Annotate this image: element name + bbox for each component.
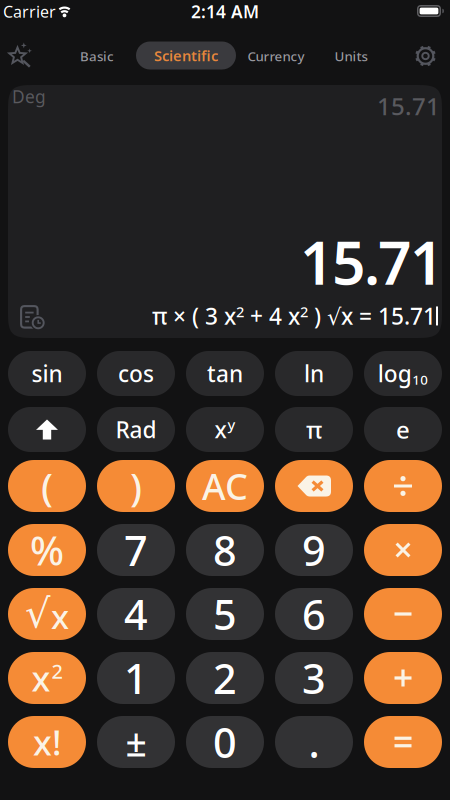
- staticText: (: [41, 460, 53, 512]
- button[interactable]: Themes: [2, 37, 38, 73]
- staticText: tan: [207, 358, 243, 388]
- staticText: ±: [125, 717, 146, 767]
- staticText: 6: [302, 587, 326, 641]
- staticText: 2: [51, 658, 62, 684]
- staticText: Currency: [247, 47, 304, 65]
- button[interactable]: %: [8, 524, 86, 576]
- staticText: 2:14 AM: [191, 0, 259, 23]
- button[interactable]: 2: [186, 652, 264, 704]
- button[interactable]: 8: [186, 524, 264, 576]
- staticText: 3: [302, 651, 326, 705]
- staticText: e: [396, 414, 410, 445]
- staticText: ) √x = 15.71: [308, 301, 436, 331]
- button[interactable]: e: [364, 407, 442, 452]
- button[interactable]: Backspace: [275, 460, 353, 512]
- button[interactable]: 1: [97, 652, 175, 704]
- staticText: ln: [304, 358, 324, 388]
- staticText: sin: [31, 358, 62, 388]
- staticText: √: [25, 591, 50, 637]
- button[interactable]: Scientific: [136, 41, 236, 69]
- button[interactable]: Multiply: [364, 524, 442, 576]
- staticText: y: [227, 415, 235, 434]
- staticText: 4: [124, 587, 148, 641]
- button[interactable]: 6: [275, 588, 353, 640]
- staticText: 0: [213, 715, 237, 769]
- staticText: 2: [300, 302, 308, 321]
- staticText: 5: [213, 587, 237, 641]
- button[interactable]: Subtract: [364, 588, 442, 640]
- button[interactable]: 9: [275, 524, 353, 576]
- button[interactable]: AC: [186, 460, 264, 512]
- staticText: Basic: [80, 47, 114, 65]
- staticText: Scientific: [154, 46, 218, 65]
- staticText: + 4 x: [244, 301, 300, 331]
- staticText: Rad: [115, 414, 156, 444]
- button[interactable]: Settings: [407, 38, 443, 74]
- staticText: Units: [334, 47, 367, 65]
- button[interactable]: Square root: [8, 588, 86, 640]
- staticText: %: [30, 523, 64, 576]
- button[interactable]: Rad: [97, 407, 175, 452]
- button[interactable]: π: [275, 407, 353, 452]
- button[interactable]: 5: [186, 588, 264, 640]
- staticText: log: [378, 358, 412, 388]
- staticText: 10: [412, 371, 428, 388]
- button[interactable]: sin: [8, 351, 86, 396]
- staticText: x: [51, 594, 69, 638]
- staticText: .: [308, 715, 319, 769]
- staticText: Deg: [12, 85, 46, 108]
- staticText: 2: [213, 651, 237, 705]
- staticText: x: [31, 655, 50, 701]
- staticText: 2: [236, 302, 244, 321]
- button[interactable]: 0: [186, 716, 264, 768]
- button[interactable]: tan: [186, 351, 264, 396]
- button[interactable]: cos: [97, 351, 175, 396]
- button[interactable]: x: [8, 652, 86, 704]
- staticText: 8: [213, 523, 237, 577]
- button[interactable]: x: [186, 407, 264, 452]
- button[interactable]: Add: [364, 652, 442, 704]
- button[interactable]: 3: [275, 652, 353, 704]
- button[interactable]: Basic: [62, 38, 132, 74]
- staticText: 15.71: [377, 90, 440, 122]
- staticText: π × ( 3 x: [152, 301, 236, 331]
- button[interactable]: Currency: [231, 38, 321, 74]
- button[interactable]: Divide: [364, 460, 442, 512]
- staticText: x: [214, 414, 226, 444]
- staticText: AC: [202, 462, 248, 510]
- button[interactable]: .: [275, 716, 353, 768]
- button[interactable]: ): [97, 460, 175, 512]
- staticText: 7: [124, 523, 148, 577]
- button[interactable]: 4: [97, 588, 175, 640]
- staticText: π: [306, 414, 322, 445]
- staticText: cos: [118, 358, 154, 388]
- staticText: Carrier: [3, 1, 56, 22]
- staticText: x!: [33, 719, 61, 765]
- button[interactable]: x!: [8, 716, 86, 768]
- button[interactable]: (: [8, 460, 86, 512]
- button[interactable]: Shift: [8, 407, 86, 452]
- button[interactable]: Equals: [364, 716, 442, 768]
- staticText: ): [130, 460, 142, 512]
- button[interactable]: ln: [275, 351, 353, 396]
- button[interactable]: 7: [97, 524, 175, 576]
- staticText: 1: [124, 651, 148, 705]
- staticText: 15.71: [300, 223, 444, 301]
- button[interactable]: log: [364, 351, 442, 396]
- button[interactable]: ±: [97, 716, 175, 768]
- button[interactable]: Units: [321, 38, 381, 74]
- button[interactable]: History: [20, 305, 47, 331]
- staticText: 9: [302, 523, 326, 577]
